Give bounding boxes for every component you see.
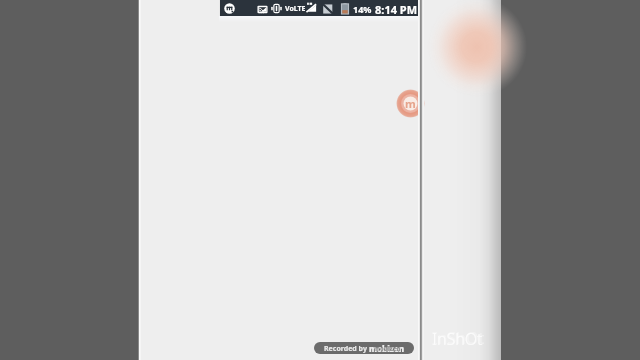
staticText: mobizen: [369, 343, 405, 354]
staticText: InShOt: [432, 328, 483, 350]
staticText: mobizen: [374, 345, 401, 353]
staticText: InShOt: [432, 327, 485, 349]
staticText: 8:14 PM: [375, 2, 418, 17]
button[interactable]: Recorded by: [314, 342, 414, 354]
staticText: Recorded by: [324, 344, 369, 354]
button[interactable]: Status bar: [219, 0, 420, 16]
staticText: m: [405, 96, 416, 111]
staticText: 14%: [353, 3, 372, 15]
button[interactable]: Mobizen recorder: [396, 89, 425, 118]
staticText: VoLTE: [285, 4, 306, 14]
